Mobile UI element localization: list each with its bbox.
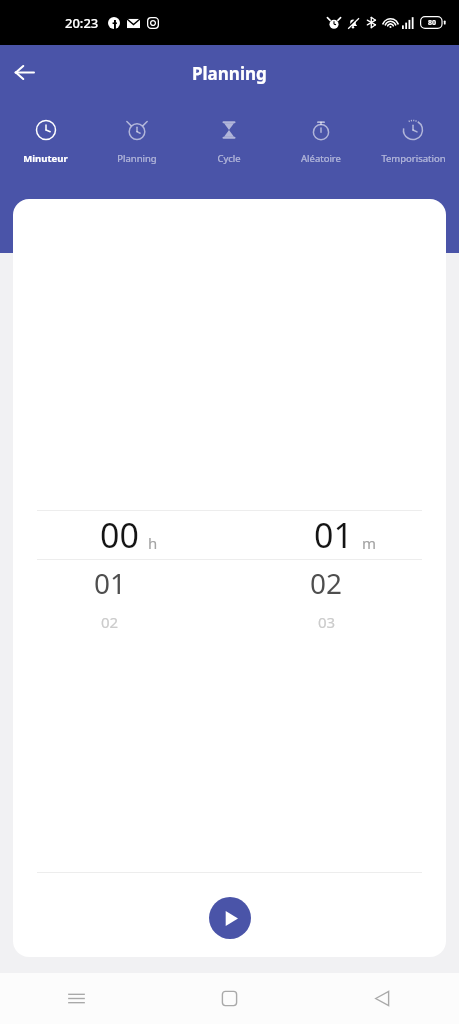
staticText: Aléatoire: [301, 152, 341, 165]
staticText: 01: [94, 564, 127, 602]
button[interactable]: 01: [13, 560, 229, 605]
button[interactable]: Back: [306, 973, 459, 1024]
button[interactable]: 01: [229, 511, 446, 559]
button[interactable]: Start: [209, 897, 251, 939]
staticText: Cycle: [217, 152, 241, 165]
staticText: 00: [100, 512, 139, 558]
button[interactable]: 00: [13, 511, 229, 559]
button[interactable]: Planning: [91, 116, 183, 168]
staticText: 80: [428, 18, 437, 28]
button[interactable]: Recents: [0, 973, 153, 1024]
staticText: 01: [314, 512, 353, 558]
staticText: Temporisation: [381, 152, 446, 165]
staticText: m: [362, 533, 377, 553]
staticText: 20:23: [65, 14, 99, 32]
button[interactable]: Minuteur: [0, 116, 91, 168]
button[interactable]: 02: [13, 605, 229, 639]
button[interactable]: Home: [153, 973, 306, 1024]
button[interactable]: Temporisation: [367, 116, 459, 168]
button[interactable]: Cycle: [183, 116, 275, 168]
button[interactable]: Back: [8, 56, 40, 88]
staticText: 02: [310, 564, 343, 602]
staticText: Planning: [192, 62, 267, 85]
staticText: Minuteur: [23, 152, 68, 165]
button[interactable]: Aléatoire: [275, 116, 367, 168]
button[interactable]: 03: [229, 605, 446, 639]
staticText: h: [148, 533, 158, 553]
button[interactable]: 02: [229, 560, 446, 605]
staticText: 02: [101, 612, 119, 632]
staticText: 03: [318, 612, 336, 632]
staticText: Planning: [117, 152, 157, 165]
